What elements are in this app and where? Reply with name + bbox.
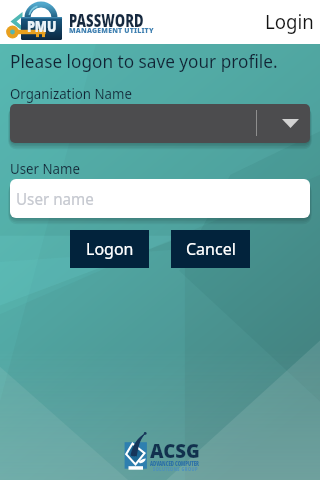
button[interactable]: Cancel [171, 230, 250, 268]
staticText: MANAGEMENT UTILITY [69, 25, 155, 35]
staticText: Login [265, 9, 314, 35]
staticText: Please logon to save your profile. [10, 49, 278, 74]
staticText: User Name [10, 158, 80, 178]
staticText: ACSG [150, 437, 200, 464]
staticText: ADVANCED COMPUTER [150, 459, 199, 467]
staticText: Logon [86, 238, 134, 260]
staticText: User name [16, 188, 95, 210]
staticText: Cancel [186, 238, 236, 260]
staticText: Organization Name [10, 83, 133, 103]
staticText: PASSWORD [69, 9, 144, 32]
button[interactable] [10, 104, 310, 143]
staticText: SOLUTIONS GROUP [153, 465, 198, 472]
button[interactable]: Logon [70, 230, 149, 268]
staticText: PMU [27, 16, 57, 36]
button[interactable]: User name [10, 179, 310, 218]
